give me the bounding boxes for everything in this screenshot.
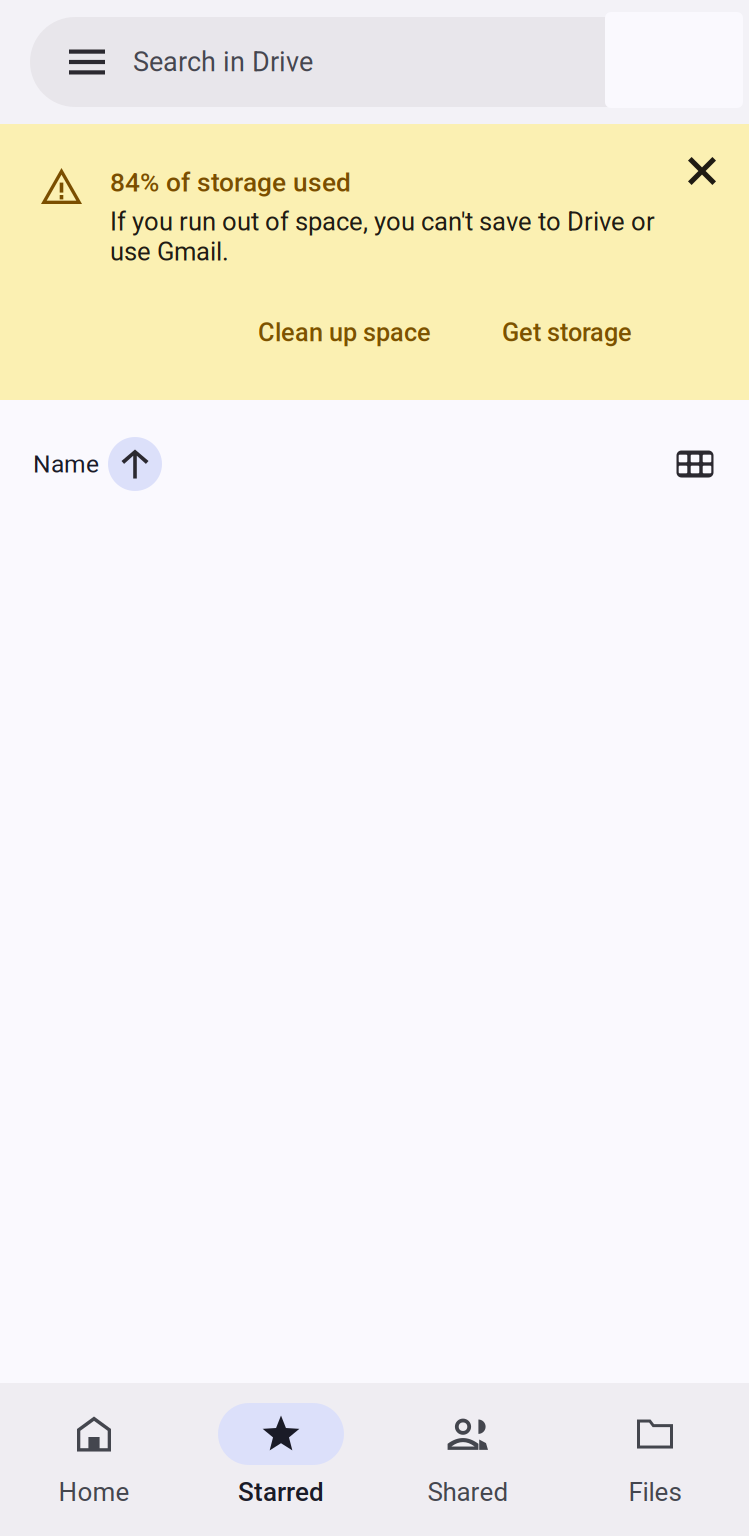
button[interactable]: Search in Drive xyxy=(30,17,720,107)
button[interactable]: Starred xyxy=(187,1383,374,1536)
button[interactable]: Home xyxy=(0,1383,187,1536)
staticText: Search in Drive xyxy=(133,46,313,78)
staticText: Home xyxy=(58,1477,129,1507)
staticText: If you run out of space, you can't save … xyxy=(110,207,655,267)
staticText: 84% of storage used xyxy=(110,167,351,198)
button[interactable]: Name xyxy=(0,437,162,491)
button[interactable]: Clean up space xyxy=(258,318,431,347)
button[interactable]: Dismiss xyxy=(674,143,730,199)
button[interactable]: Shared xyxy=(374,1383,561,1536)
staticText: Name xyxy=(33,450,99,478)
staticText: Starred xyxy=(238,1477,324,1507)
staticText: Clean up space xyxy=(258,318,431,347)
button[interactable]: Switch to grid view xyxy=(659,428,731,500)
button[interactable]: Get storage xyxy=(431,318,632,347)
staticText: Get storage xyxy=(502,318,632,347)
button[interactable]: Files xyxy=(561,1383,748,1536)
staticText: Files xyxy=(628,1477,681,1507)
staticText: Shared xyxy=(427,1477,508,1507)
